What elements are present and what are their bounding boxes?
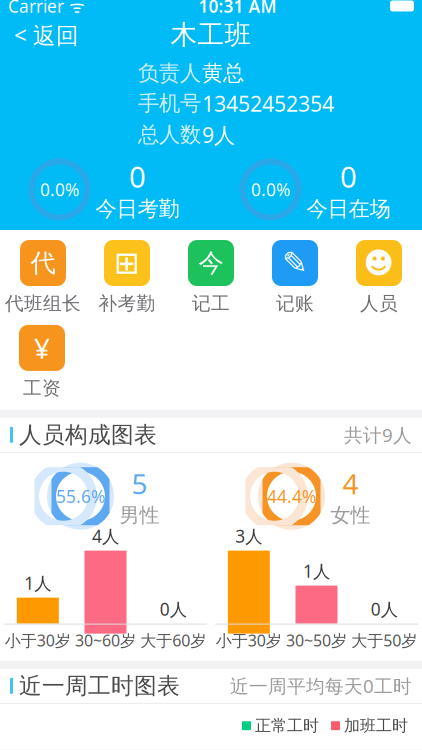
staticText: ☻ — [363, 246, 394, 280]
staticText: 女性 — [330, 503, 370, 528]
staticText: 总人数 — [138, 122, 201, 148]
staticText: 正常工时 — [255, 716, 319, 736]
staticText: 负责人 — [138, 60, 201, 86]
staticText: 记工 — [192, 292, 230, 315]
staticText: Carrier ᯤ — [8, 0, 85, 17]
staticText: 30~60岁 — [75, 630, 136, 651]
staticText: 代 — [30, 247, 55, 278]
staticText: 1人 — [24, 572, 51, 595]
staticText: 小于30岁 — [5, 630, 71, 651]
button[interactable]: ✎ — [253, 240, 337, 315]
staticText: 补考勤 — [98, 292, 155, 315]
staticText: 3人 — [235, 525, 262, 548]
staticText: 0人 — [371, 598, 398, 621]
staticText: 1人 — [303, 560, 330, 583]
button[interactable]: 代 — [1, 240, 85, 315]
staticText: 今日在场 — [306, 196, 390, 222]
staticText: 大于60岁 — [140, 630, 206, 651]
staticText: 木工班 — [170, 19, 251, 51]
staticText: 0.0% — [40, 178, 79, 201]
staticText: 男性 — [119, 503, 159, 528]
staticText: 小于30岁 — [216, 630, 282, 651]
button[interactable]: ¥ — [0, 325, 84, 400]
staticText: 4人 — [92, 525, 119, 548]
staticText: 大于50岁 — [351, 630, 417, 651]
staticText: 记账 — [276, 292, 314, 315]
staticText: 代班组长 — [5, 292, 81, 315]
button[interactable]: ⊞ — [85, 240, 169, 315]
staticText: 工资 — [23, 377, 61, 400]
button[interactable]: 今 — [169, 240, 253, 315]
staticText: 30~50岁 — [286, 630, 347, 651]
staticText: 近一周工时图表 — [19, 672, 180, 700]
staticText: 今日考勤 — [95, 196, 179, 222]
staticText: ⊞ — [114, 246, 140, 280]
staticText: 9人 — [202, 120, 235, 149]
staticText: 0 — [340, 157, 357, 196]
staticText: 今 — [198, 247, 223, 278]
staticText: 44.4% — [267, 485, 316, 508]
staticText: 人员构成图表 — [19, 421, 157, 449]
staticText: 人员 — [360, 292, 398, 315]
staticText: 黄总 — [202, 60, 244, 86]
staticText: 5 — [131, 465, 147, 502]
staticText: 0人 — [160, 598, 187, 621]
staticText: < 返回 — [14, 20, 79, 50]
staticText: 0.0% — [251, 178, 290, 201]
button[interactable]: < 返回 — [0, 14, 93, 56]
staticText: ¥ — [34, 329, 50, 366]
staticText: 13452452354 — [202, 89, 334, 117]
button[interactable]: ☻ — [337, 240, 421, 315]
staticText: 共计9人 — [344, 422, 412, 447]
staticText: 55.6% — [56, 485, 105, 508]
staticText: 0 — [129, 157, 146, 196]
staticText: 近一周平均每天0工时 — [230, 673, 412, 698]
staticText: 10:31 AM — [198, 0, 276, 17]
staticText: 加班工时 — [344, 716, 408, 736]
staticText: 4 — [342, 465, 358, 502]
staticText: ✎ — [282, 246, 308, 280]
staticText: 手机号 — [138, 90, 201, 116]
